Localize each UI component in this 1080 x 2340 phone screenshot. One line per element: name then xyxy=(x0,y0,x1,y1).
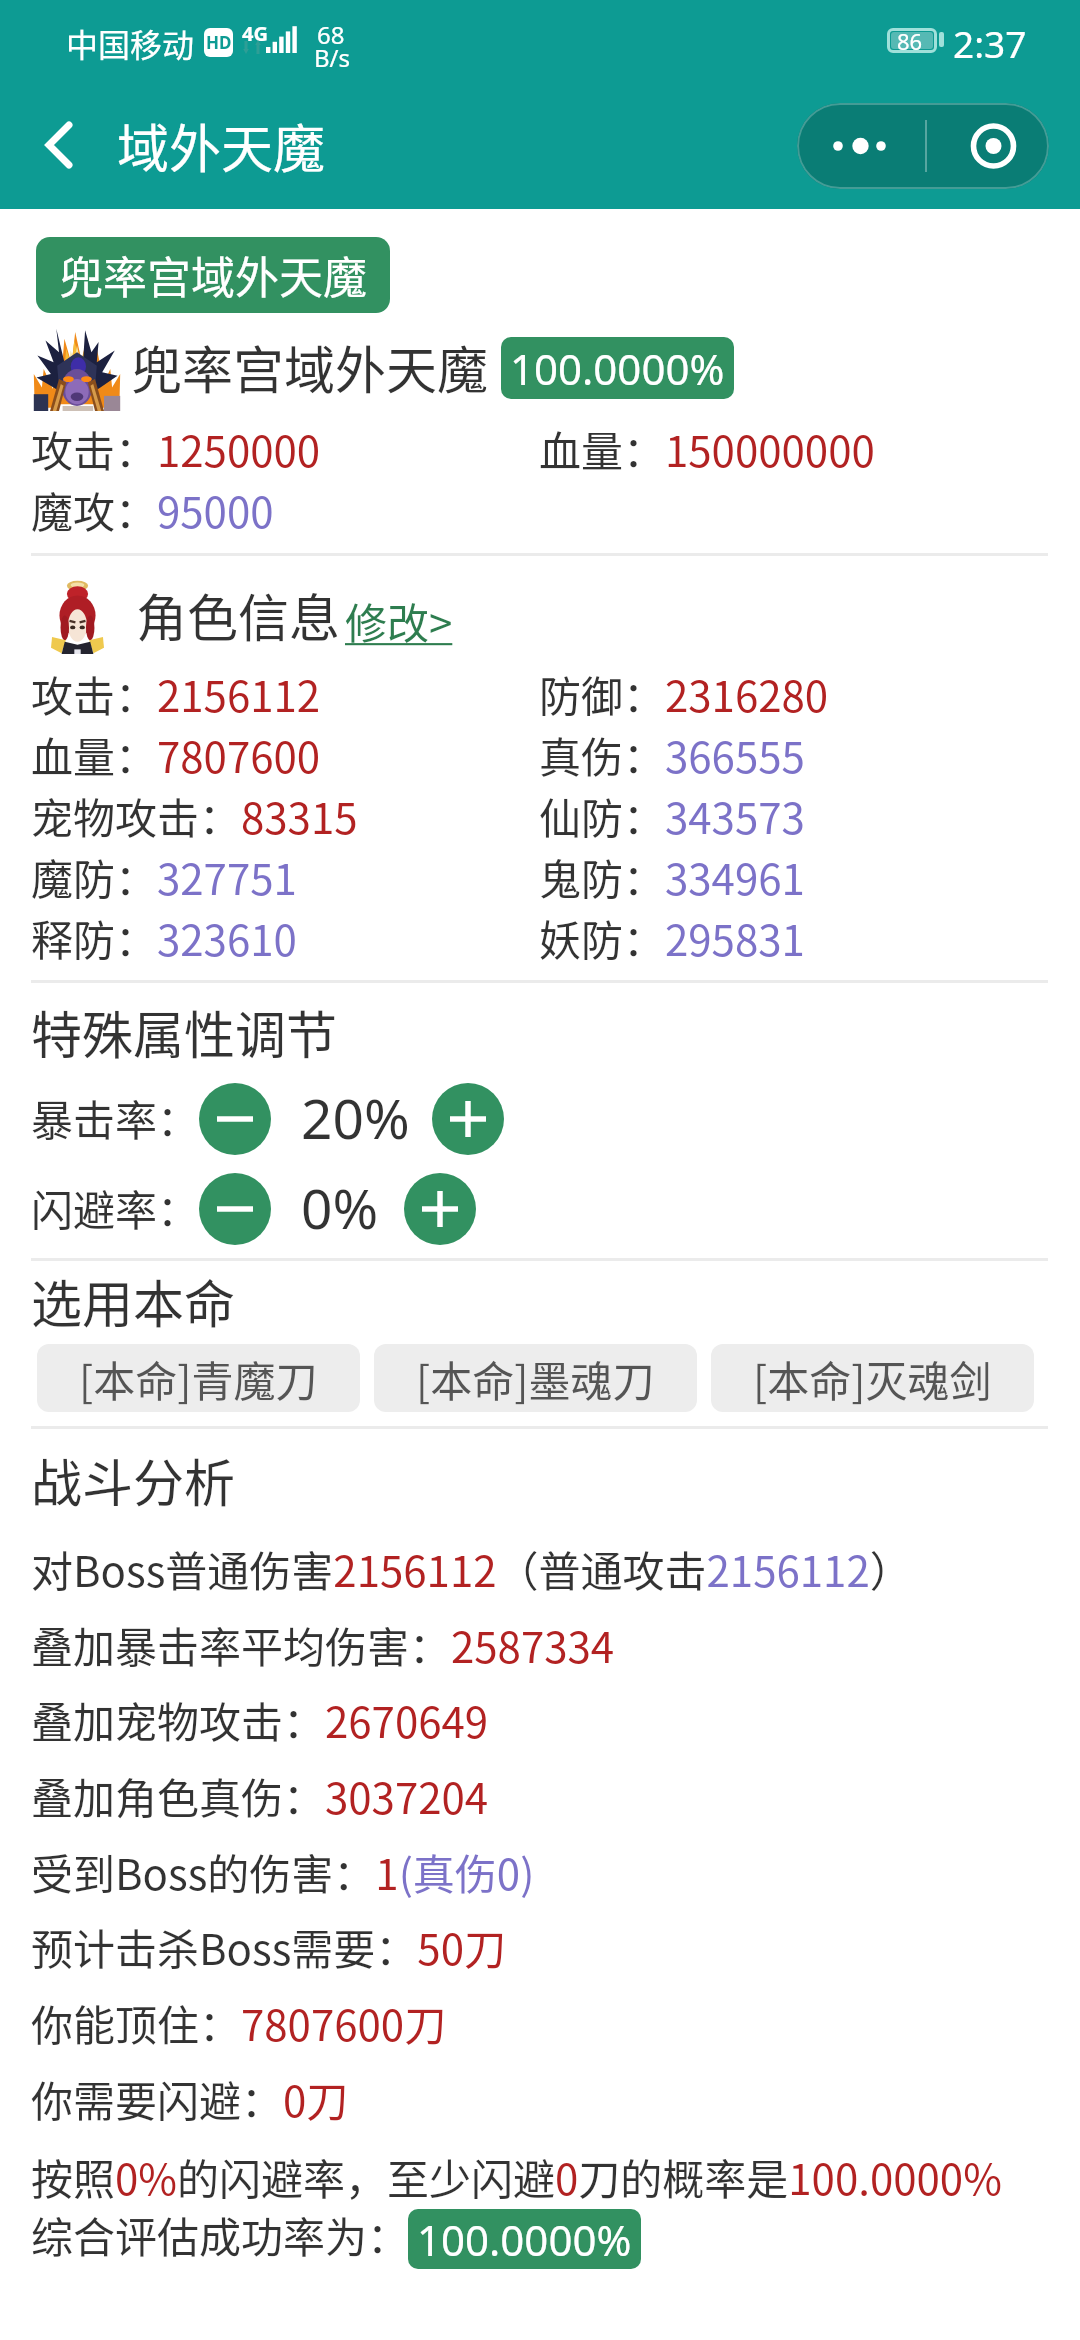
button[interactable]: 兜率宫域外天魔 xyxy=(36,237,390,313)
staticText: 兜率宫域外天魔 xyxy=(59,243,367,307)
staticText: 叠加角色真伤：3037204 xyxy=(31,1765,489,1826)
staticText: [本命]青魔刀 xyxy=(79,1348,318,1409)
staticText: 4G xyxy=(242,20,268,47)
button[interactable]: Increase xyxy=(432,1083,504,1155)
staticText: 100.0000% xyxy=(510,340,725,397)
staticText: 受到Boss的伤害：1(真伤0) xyxy=(31,1841,535,1902)
staticText: 0% xyxy=(301,1170,379,1245)
staticText: [本命]墨魂刀 xyxy=(416,1348,655,1409)
button[interactable]: [本命]墨魂刀 xyxy=(374,1344,697,1412)
staticText: 中国移动 xyxy=(66,20,195,66)
staticText: 战斗分析 xyxy=(31,1443,236,1517)
button[interactable]: Increase xyxy=(404,1173,476,1245)
staticText: 修改> xyxy=(345,590,453,651)
button[interactable]: 修改> xyxy=(345,590,453,651)
staticText: 妖防：295831 xyxy=(539,907,805,968)
staticText: 仙防：343573 xyxy=(539,785,805,846)
staticText: 攻击：2156112 xyxy=(31,663,321,724)
staticText: 魔攻：95000 xyxy=(31,479,274,540)
staticText: 综合评估成功率为： xyxy=(31,2204,410,2265)
staticText: 攻击：1250000 xyxy=(31,418,321,479)
staticText: 20% xyxy=(301,1080,410,1155)
staticText: 叠加宠物攻击：2670649 xyxy=(31,1689,489,1750)
staticText: 角色信息 xyxy=(136,578,341,652)
staticText: 预计击杀Boss需要：50刀 xyxy=(31,1916,506,1977)
staticText: 选用本命 xyxy=(31,1264,236,1338)
staticText: 真伤：366555 xyxy=(539,724,805,785)
staticText: 叠加暴击率平均伤害：2587334 xyxy=(31,1614,615,1675)
staticText: 释防：323610 xyxy=(31,907,297,968)
staticText: 你需要闪避：0刀 xyxy=(31,2068,349,2129)
staticText: 暴击率： xyxy=(31,1087,200,1148)
staticText: 鬼防：334961 xyxy=(539,846,805,907)
staticText: 68 xyxy=(317,18,345,51)
staticText: 86 xyxy=(897,26,923,51)
staticText: 魔防：327751 xyxy=(31,846,297,907)
staticText: 血量：150000000 xyxy=(539,418,875,479)
button[interactable]: Back xyxy=(9,95,109,195)
staticText: 你能顶住：7807600刀 xyxy=(31,1992,447,2053)
button[interactable]: [本命]青魔刀 xyxy=(37,1344,360,1412)
staticText: 100.0000% xyxy=(417,2211,632,2268)
staticText: HD xyxy=(206,31,232,54)
staticText: 按照0%的闪避率，至少闪避0刀的概率是100.0000% xyxy=(31,2146,1002,2207)
button[interactable]: Decrease xyxy=(199,1173,271,1245)
staticText: 对Boss普通伤害2156112（普通攻击2156112） xyxy=(31,1538,912,1599)
staticText: 宠物攻击：83315 xyxy=(31,785,358,846)
button[interactable]: More options xyxy=(797,103,926,189)
staticText: 血量：7807600 xyxy=(31,724,321,785)
button[interactable]: Close mini program xyxy=(927,103,1049,189)
staticText: 闪避率： xyxy=(31,1177,200,1238)
staticText: [本命]灭魂剑 xyxy=(753,1348,992,1409)
staticText: B/s xyxy=(314,41,351,74)
button[interactable]: [本命]灭魂剑 xyxy=(711,1344,1034,1412)
staticText: 兜率宫域外天魔 xyxy=(131,330,489,404)
staticText: 防御：2316280 xyxy=(539,663,829,724)
button[interactable]: Decrease xyxy=(199,1083,271,1155)
staticText: 2:37 xyxy=(953,18,1027,68)
staticText: 特殊属性调节 xyxy=(31,995,338,1069)
staticText: 域外天魔 xyxy=(117,108,326,183)
